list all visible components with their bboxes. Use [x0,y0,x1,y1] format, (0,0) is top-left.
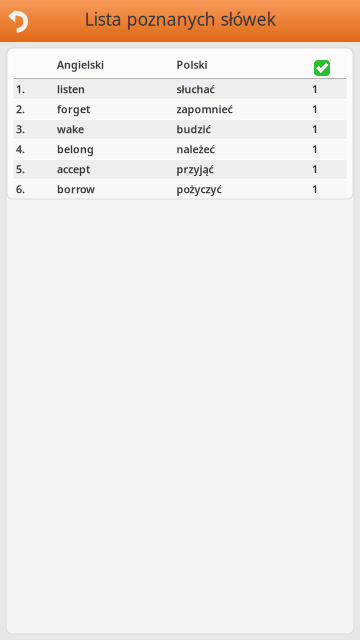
staticText: Angielski [57,57,104,72]
staticText: pożyczyć [176,182,221,196]
staticText: belong [57,142,94,156]
staticText: Polski [176,57,207,72]
staticText: 3. [16,122,25,136]
staticText: 6. [16,182,25,196]
staticText: przyjąć [176,162,213,176]
staticText: 1 [312,162,318,176]
staticText: 5. [16,162,25,176]
button[interactable]: Back [0,0,44,42]
staticText: 2. [16,102,25,116]
staticText: 1 [312,102,318,116]
staticText: 1. [16,82,25,96]
staticText: forget [57,102,90,116]
staticText: budzić [176,122,210,136]
staticText: 1 [312,142,318,156]
staticText: borrow [57,182,95,196]
staticText: 1 [312,122,318,136]
staticText: wake [57,122,84,136]
staticText: należeć [176,142,214,156]
staticText: zapomnieć [176,102,232,116]
staticText: Lista poznanych słówek [84,7,275,30]
staticText: 1 [312,182,318,196]
staticText: 1 [312,82,318,96]
staticText: listen [57,82,85,96]
staticText: accept [57,162,90,176]
staticText: słuchać [176,82,214,96]
staticText: 4. [16,142,25,156]
